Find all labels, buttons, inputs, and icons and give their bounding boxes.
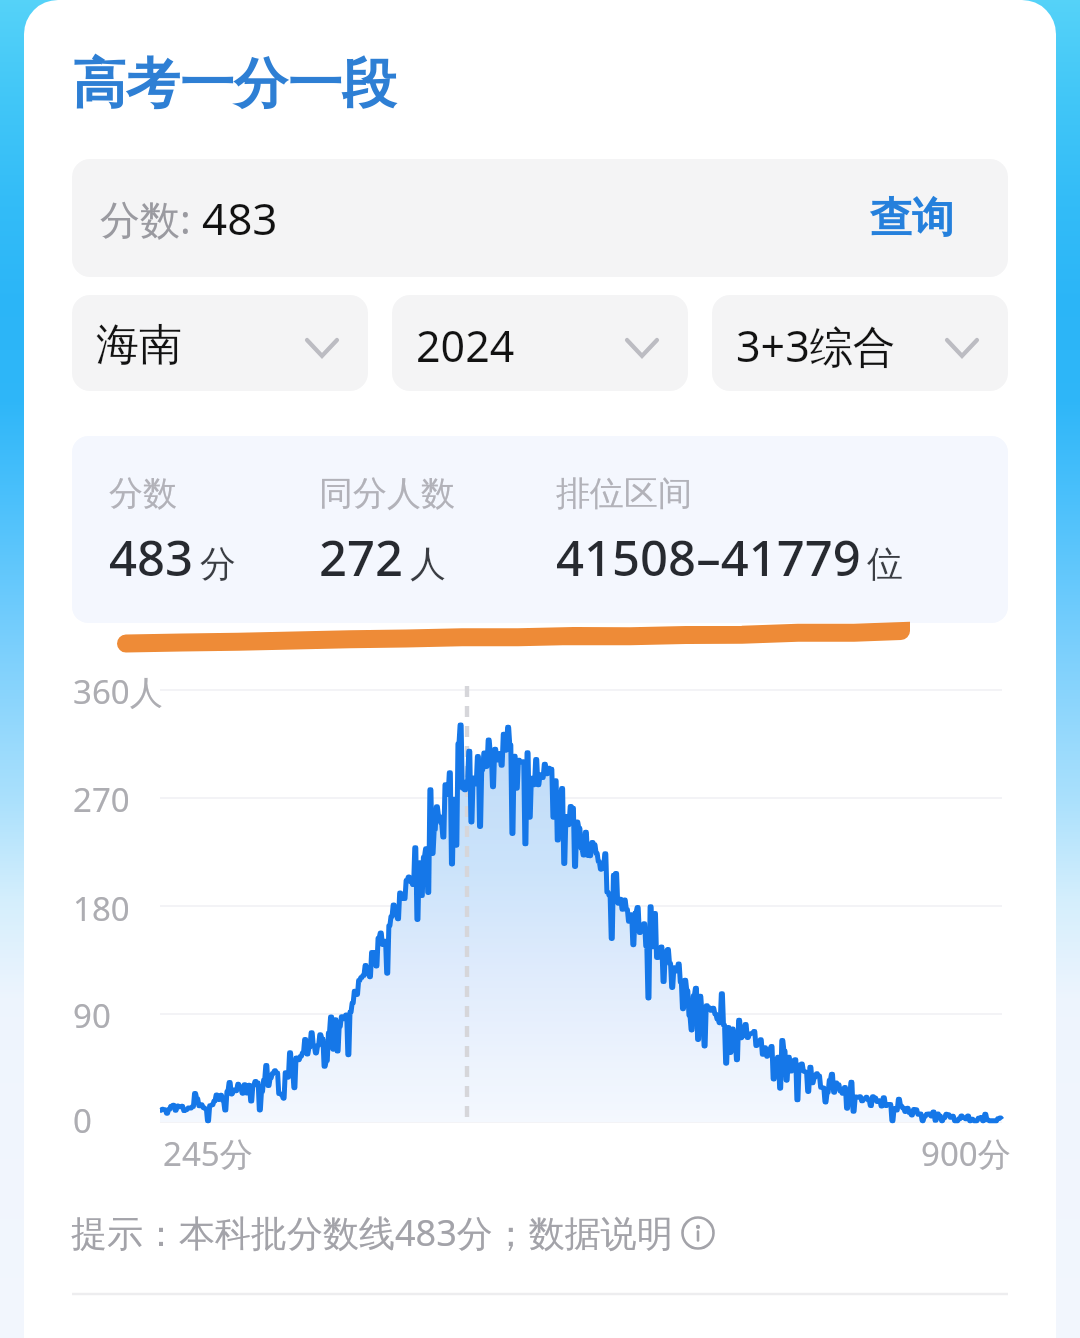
staticText: 3+3综合 <box>736 316 896 375</box>
staticText: 245分 <box>163 1131 253 1176</box>
staticText: 高考一分一段 <box>72 50 396 118</box>
staticText: 位 <box>867 541 903 586</box>
staticText: 同分人数 <box>319 472 455 515</box>
staticText: 分 <box>200 541 236 586</box>
staticText: 90 <box>73 993 111 1038</box>
button[interactable]: 数据说明 <box>681 1216 715 1250</box>
staticText: 483 <box>109 524 194 591</box>
staticText: 180 <box>73 886 130 931</box>
staticText: 排位区间 <box>556 472 692 515</box>
staticText: 人 <box>410 541 446 586</box>
button[interactable]: 海南 <box>72 295 368 391</box>
staticText: 483 <box>202 188 278 248</box>
button[interactable]: 3+3综合 <box>712 295 1008 391</box>
staticText: 270 <box>73 777 130 822</box>
staticText: 提示：本科批分数线483分；数据说明 <box>71 1208 673 1257</box>
staticText: 272 <box>319 524 404 591</box>
button[interactable]: 查询 <box>870 192 954 245</box>
staticText: 41508–41779 <box>556 524 861 591</box>
staticText: 海南 <box>96 318 182 372</box>
staticText: 360人 <box>73 669 163 714</box>
button[interactable]: 2024 <box>392 295 688 391</box>
staticText: 900分 <box>921 1131 1011 1176</box>
staticText: 0 <box>73 1098 92 1143</box>
button[interactable]: 分数: <box>72 159 1008 277</box>
staticText: 2024 <box>416 316 515 375</box>
staticText: 分数 <box>109 472 177 515</box>
staticText: 分数: <box>100 191 202 246</box>
